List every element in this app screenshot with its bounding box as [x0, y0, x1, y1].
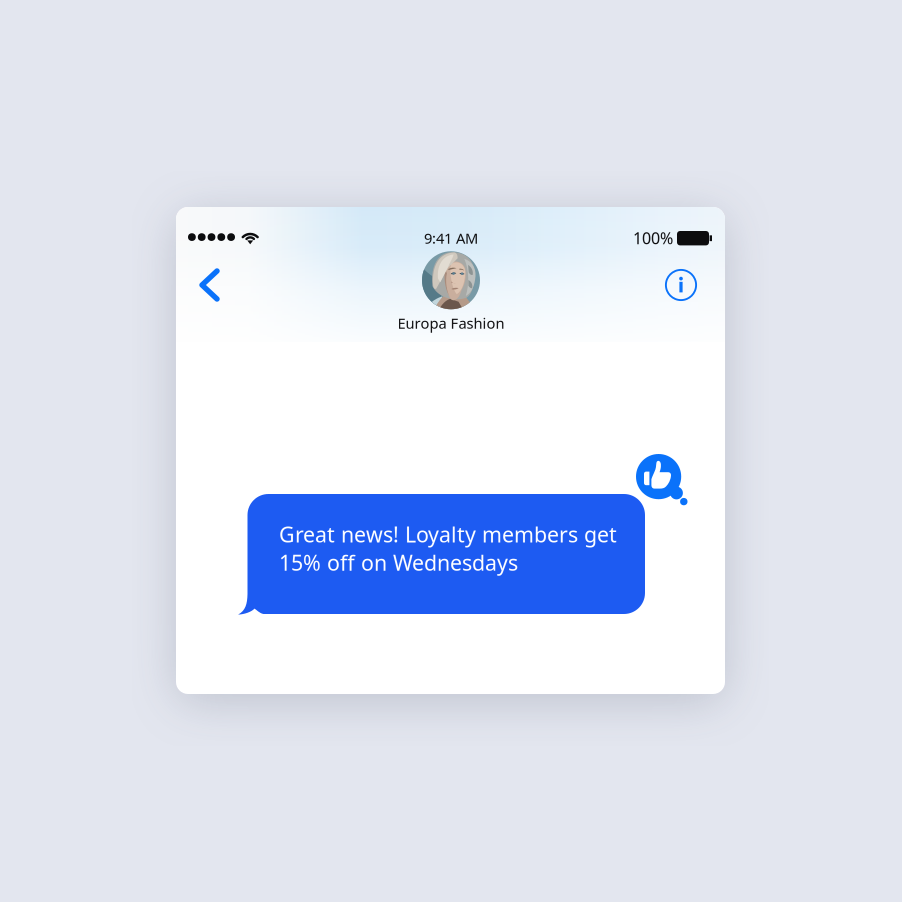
button[interactable]: Europa Fashion [419, 252, 483, 332]
staticText: Great news! Loyalty members get 15% off … [279, 520, 617, 577]
button[interactable]: Back [184, 259, 236, 311]
button[interactable]: Great news! Loyalty members get 15% off … [238, 494, 645, 614]
staticText: Europa Fashion [397, 313, 504, 333]
button[interactable]: Conversation details [655, 259, 707, 311]
staticText: 9:41 AM [424, 228, 478, 248]
button[interactable]: Liked [636, 454, 689, 507]
staticText: 100% [633, 227, 673, 249]
